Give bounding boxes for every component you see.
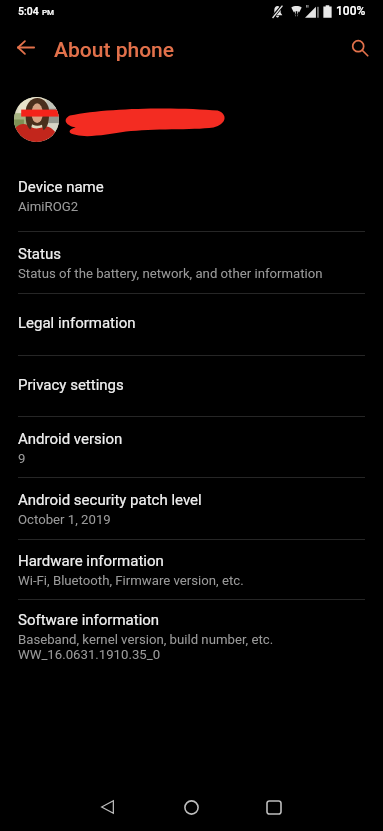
staticText: Legal information xyxy=(18,314,136,332)
staticText: About phone xyxy=(54,38,175,63)
staticText: 5:04 xyxy=(18,5,39,17)
staticText: Hardware information xyxy=(18,552,164,570)
staticText: Device name xyxy=(18,178,104,196)
button[interactable]: Hardware information xyxy=(0,540,383,599)
staticText: Privacy settings xyxy=(18,376,124,394)
staticText: Status of the battery, network, and othe… xyxy=(18,266,323,281)
staticText: Android version xyxy=(18,430,123,448)
button[interactable]: Android security patch level xyxy=(0,478,383,539)
staticText: October 1, 2019 xyxy=(18,512,111,527)
button[interactable]: Status xyxy=(0,232,383,293)
button[interactable]: Android version xyxy=(0,417,383,477)
staticText: WW_16.0631.1910.35_0 xyxy=(18,647,161,662)
staticText: 100% xyxy=(336,4,366,18)
button[interactable]: Device name xyxy=(0,165,383,231)
button[interactable]: Search xyxy=(343,30,377,64)
button[interactable]: Privacy settings xyxy=(0,356,383,416)
staticText: Status xyxy=(18,245,61,263)
button[interactable]: Legal information xyxy=(0,294,383,355)
staticText: AimiROG2 xyxy=(18,199,79,214)
button[interactable]: Back xyxy=(10,31,42,63)
button[interactable]: Back xyxy=(78,779,136,831)
button[interactable]: Software information xyxy=(0,600,383,676)
staticText: Baseband, kernel version, build number, … xyxy=(18,632,274,647)
button[interactable]: Home xyxy=(162,779,220,831)
staticText: Android security patch level xyxy=(18,491,202,509)
button[interactable]: Recents xyxy=(245,779,303,831)
button[interactable] xyxy=(0,74,383,165)
staticText: Software information xyxy=(18,611,160,629)
staticText: Wi-Fi, Bluetooth, Firmware version, etc. xyxy=(18,573,244,588)
staticText: PM xyxy=(42,8,55,17)
staticText: 9 xyxy=(18,451,26,466)
